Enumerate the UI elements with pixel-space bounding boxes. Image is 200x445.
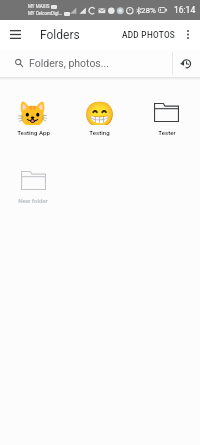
staticText: 😁: [84, 100, 116, 125]
button[interactable]: Tester: [133, 100, 200, 136]
button[interactable]: Navigation menu: [0, 20, 31, 49]
staticText: MY CelcomDigi...: [28, 11, 63, 16]
staticText: ADD PHOTOS: [122, 30, 176, 40]
button[interactable]: 😺: [0, 100, 66, 136]
staticText: 28%: [141, 6, 156, 15]
staticText: Folders: [40, 28, 80, 42]
staticText: 16:14: [174, 5, 196, 15]
staticText: New folder: [18, 197, 48, 204]
button[interactable]: More options: [178, 20, 198, 49]
staticText: MY MAXIS: [28, 4, 50, 9]
button[interactable]: New folder: [0, 168, 66, 204]
staticText: 😺: [17, 100, 49, 125]
staticText: Tester: [158, 129, 176, 136]
staticText: Testing: [89, 129, 110, 136]
button[interactable]: 😁: [66, 100, 133, 136]
staticText: Testing App: [17, 129, 50, 136]
button[interactable]: ADD PHOTOS: [116, 23, 178, 47]
button[interactable]: Search history: [173, 49, 200, 77]
staticText: Folders, photos...: [29, 57, 110, 69]
